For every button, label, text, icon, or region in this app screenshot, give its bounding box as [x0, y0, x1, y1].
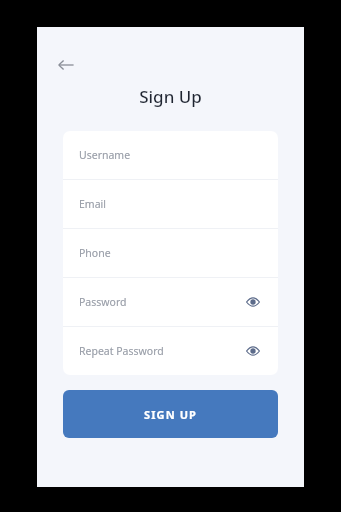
button[interactable]: Back: [46, 45, 86, 85]
staticText: Password: [79, 295, 127, 309]
button[interactable]: Phone: [63, 229, 278, 277]
button[interactable]: Repeat Password: [63, 327, 278, 375]
staticText: Repeat Password: [79, 344, 164, 358]
button[interactable]: Show password: [242, 291, 264, 313]
staticText: Phone: [79, 246, 111, 260]
staticText: Sign Up: [139, 85, 202, 108]
button[interactable]: Email: [63, 180, 278, 228]
button[interactable]: Show password: [242, 340, 264, 362]
button[interactable]: SIGN UP: [63, 390, 278, 438]
staticText: Username: [79, 148, 131, 162]
staticText: Email: [79, 197, 106, 211]
staticText: SIGN UP: [144, 407, 197, 422]
button[interactable]: Password: [63, 278, 278, 326]
button[interactable]: Username: [63, 131, 278, 179]
